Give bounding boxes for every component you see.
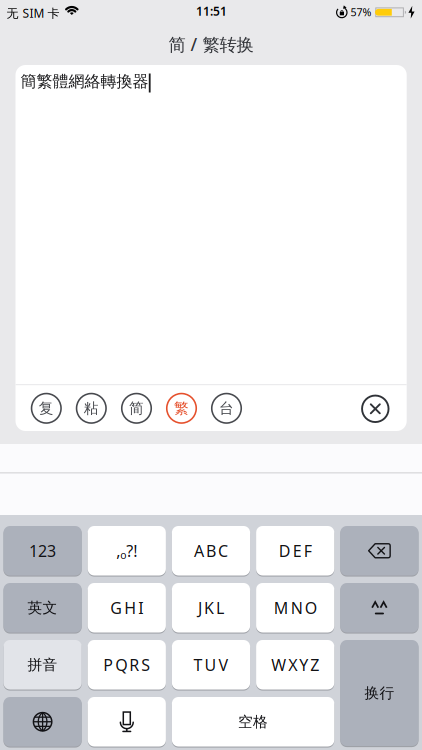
button[interactable]: 英文 <box>3 582 82 633</box>
staticText: 英文 <box>28 599 58 617</box>
staticText: 简 / 繁转换 <box>168 33 253 56</box>
button[interactable]: 繁 <box>166 393 196 423</box>
staticText: M N O <box>274 597 317 618</box>
button[interactable]: A B C <box>172 525 250 576</box>
button[interactable]: 简 <box>121 393 151 423</box>
button[interactable] <box>3 696 82 747</box>
button[interactable]: G H I <box>88 582 166 633</box>
button[interactable]: 拼音 <box>3 639 82 690</box>
button[interactable]: M N O <box>256 582 334 633</box>
button[interactable] <box>361 395 389 423</box>
staticText: ,ₒ?! <box>116 540 137 561</box>
staticText: 拼音 <box>28 656 58 674</box>
button[interactable] <box>340 582 418 633</box>
button[interactable]: D E F <box>256 525 334 576</box>
staticText: 繁 <box>174 399 189 417</box>
staticText: 换行 <box>364 684 394 702</box>
staticText: 粘 <box>84 399 99 417</box>
staticText: A B C <box>194 540 228 561</box>
button[interactable]: P Q R S <box>88 639 166 690</box>
button[interactable]: 台 <box>211 393 241 423</box>
staticText: 空格 <box>238 713 268 731</box>
button[interactable]: T U V <box>172 639 250 690</box>
button[interactable]: 换行 <box>340 639 418 747</box>
staticText: 无 SIM 卡 <box>6 5 59 21</box>
staticText: J K L <box>198 597 224 618</box>
button[interactable] <box>340 525 418 576</box>
button[interactable]: 空格 <box>172 696 334 747</box>
staticText: D E F <box>279 540 312 561</box>
button[interactable] <box>88 696 166 747</box>
button[interactable]: ,ₒ?! <box>88 525 166 576</box>
staticText: 复 <box>39 399 54 417</box>
staticText: P Q R S <box>103 654 150 675</box>
button[interactable]: 复 <box>31 393 61 423</box>
staticText: 简 <box>129 399 144 417</box>
staticText: 123 <box>29 540 56 561</box>
staticText: 11:51 <box>196 3 227 19</box>
staticText: 台 <box>219 399 234 417</box>
button[interactable]: W X Y Z <box>256 639 334 690</box>
button[interactable]: 粘 <box>76 393 106 423</box>
staticText: T U V <box>193 654 228 675</box>
staticText: 57% <box>350 5 371 19</box>
button[interactable]: 123 <box>3 525 82 576</box>
staticText: 簡繁體網絡轉換器 <box>20 72 148 91</box>
staticText: G H I <box>110 597 143 618</box>
staticText: W X Y Z <box>271 654 319 675</box>
button[interactable]: J K L <box>172 582 250 633</box>
